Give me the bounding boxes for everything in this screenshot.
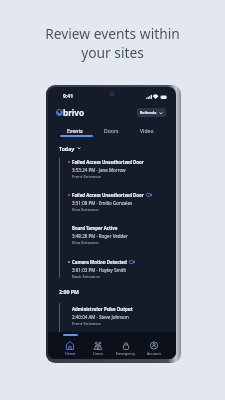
staticText: Board Tamper Active [72,225,118,231]
staticText: 3:48:28 PM · Roger Vedder [72,233,128,239]
staticText: Review events within your sites [45,24,180,62]
button[interactable]: Account [140,332,168,359]
staticText: Home [65,351,76,356]
button[interactable]: Administrator Pulse Output [68,306,176,327]
button[interactable]: Home [56,332,84,359]
staticText: 3:51:08 PM · Emilio Gonzales [72,200,133,206]
staticText: Back Entrance [72,274,100,280]
staticText: 9:41 [63,93,73,99]
button[interactable]: Emergency [112,332,140,359]
button[interactable]: Failed Access Unauthorized Door [68,192,176,213]
button[interactable]: Users [84,332,112,359]
button[interactable]: Bethesda [137,108,166,117]
staticText: Bethesda [140,110,157,115]
button[interactable]: Board Tamper Active [68,225,176,246]
staticText: Today [59,145,75,152]
staticText: Administrator Pulse Output [72,306,133,312]
staticText: Account [147,351,161,356]
staticText: Kiva Entrance [72,207,99,213]
staticText: Failed Access Unauthorized Door [72,192,144,198]
staticText: Doors [104,128,119,135]
staticText: Video [140,128,154,135]
button[interactable]: Video [129,126,165,136]
button[interactable]: Failed Access Unauthorized Door [68,159,176,180]
staticText: 3:53:24 PM · Jane Morrow [72,167,126,173]
staticText: 2:40:04 AM · Steve Johnson [72,314,129,320]
button[interactable]: Events [57,126,93,136]
button[interactable]: Doors [93,126,129,136]
staticText: Events [67,128,83,135]
staticText: 2:00 PM [59,288,79,295]
staticText: Kiva Entrance [72,240,99,246]
staticText: Failed Access Unauthorized Door [72,159,144,165]
staticText: brivo [63,107,85,118]
staticText: Front Entrance [72,174,101,180]
staticText: 3:01:03 PM · Hayley Smith [72,267,127,273]
staticText: Emergency [116,351,136,356]
button[interactable]: Camera Motion Detected [68,259,176,280]
staticText: Users [93,351,103,356]
staticText: Camera Motion Detected [72,259,127,265]
staticText: Front Entrance [72,321,101,327]
